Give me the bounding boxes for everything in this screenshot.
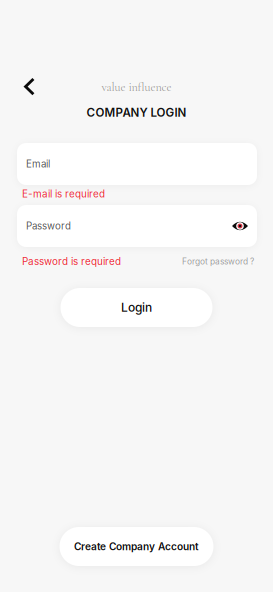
staticText: Create Company Account: [74, 540, 199, 553]
staticText: Password: [26, 220, 71, 232]
staticText: value influence: [101, 80, 171, 94]
button[interactable]: Back: [16, 76, 42, 98]
button[interactable]: Create Company Account: [59, 527, 213, 566]
staticText: E-mail is required: [22, 188, 105, 200]
button[interactable]: Email: [17, 143, 257, 185]
staticText: COMPANY LOGIN: [86, 105, 186, 119]
staticText: Login: [121, 300, 152, 315]
staticText: Password is required: [22, 255, 121, 267]
button[interactable]: Password: [17, 205, 257, 247]
button[interactable]: Forgot password ?: [182, 256, 254, 267]
button[interactable]: Show password: [228, 215, 252, 237]
staticText: Forgot password ?: [182, 256, 254, 267]
button[interactable]: Login: [60, 288, 212, 327]
staticText: Email: [26, 158, 50, 170]
